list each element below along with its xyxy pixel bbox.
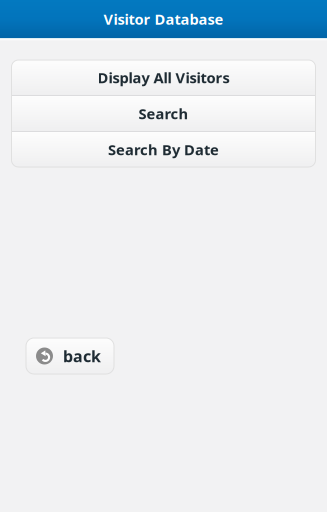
staticText: Search By Date <box>108 140 219 159</box>
staticText: back <box>63 345 101 367</box>
staticText: Visitor Database <box>103 9 223 29</box>
staticText: Search <box>138 104 188 123</box>
staticText: Display All Visitors <box>97 68 229 87</box>
button[interactable]: Display All Visitors <box>11 60 315 95</box>
button[interactable]: back <box>26 338 114 374</box>
button[interactable]: Search <box>11 96 315 131</box>
button[interactable]: Search By Date <box>11 132 315 167</box>
